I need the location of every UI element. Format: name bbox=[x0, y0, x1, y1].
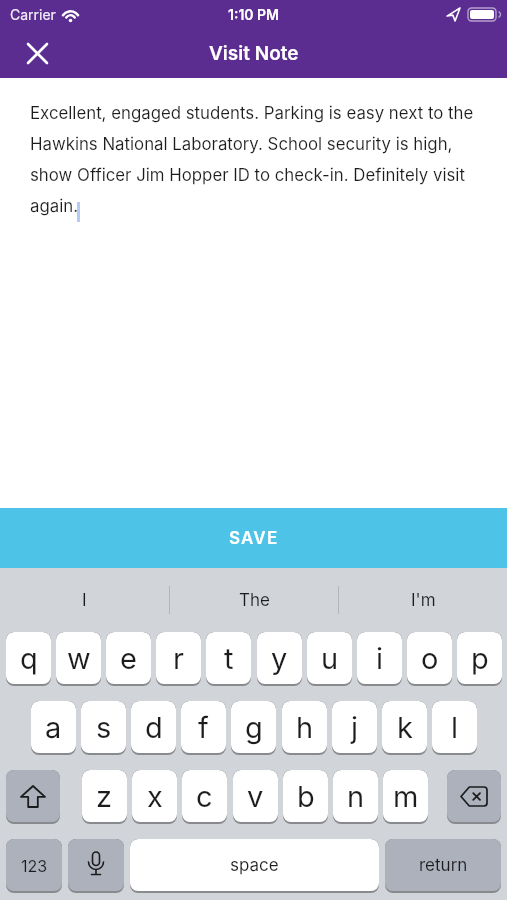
staticText: I'm bbox=[411, 590, 436, 611]
staticText: q bbox=[20, 641, 38, 676]
staticText: 1:10 PM bbox=[228, 6, 280, 23]
button[interactable]: x bbox=[132, 770, 177, 824]
staticText: k bbox=[397, 710, 413, 745]
button[interactable]: u bbox=[307, 632, 352, 686]
button[interactable]: s bbox=[81, 701, 126, 755]
button[interactable] bbox=[68, 839, 124, 893]
staticText: g bbox=[245, 710, 263, 745]
button[interactable] bbox=[18, 34, 56, 72]
button[interactable]: y bbox=[257, 632, 302, 686]
button[interactable]: i bbox=[357, 632, 402, 686]
staticText: f bbox=[198, 710, 209, 745]
staticText: d bbox=[145, 710, 163, 745]
staticText: The bbox=[239, 590, 270, 611]
button[interactable]: space bbox=[130, 839, 379, 893]
staticText: v bbox=[247, 779, 264, 814]
button[interactable]: p bbox=[457, 632, 502, 686]
button[interactable]: m bbox=[383, 770, 428, 824]
staticText: x bbox=[147, 779, 163, 814]
staticText: u bbox=[321, 641, 339, 676]
staticText: y bbox=[271, 641, 288, 676]
button[interactable]: j bbox=[332, 701, 377, 755]
staticText: o bbox=[421, 641, 439, 676]
staticText: n bbox=[347, 779, 365, 814]
staticText: a bbox=[45, 710, 62, 745]
button[interactable]: k bbox=[382, 701, 427, 755]
button[interactable]: The bbox=[170, 568, 338, 632]
button[interactable]: e bbox=[106, 632, 151, 686]
staticText: w bbox=[67, 641, 91, 676]
staticText: Visit Note bbox=[209, 42, 299, 65]
staticText: Excellent, engaged students. Parking is … bbox=[30, 103, 474, 216]
button[interactable]: 123 bbox=[6, 839, 62, 893]
button[interactable]: SAVE bbox=[0, 508, 507, 568]
staticText: h bbox=[296, 710, 314, 745]
staticText: space bbox=[230, 855, 279, 876]
staticText: return bbox=[419, 855, 468, 876]
staticText: s bbox=[96, 710, 112, 745]
staticText: Carrier bbox=[10, 6, 56, 23]
staticText: l bbox=[451, 710, 459, 745]
button[interactable]: c bbox=[182, 770, 227, 824]
button[interactable]: h bbox=[282, 701, 327, 755]
button[interactable]: b bbox=[283, 770, 328, 824]
staticText: b bbox=[297, 779, 315, 814]
button[interactable]: d bbox=[131, 701, 176, 755]
button[interactable]: g bbox=[231, 701, 276, 755]
button[interactable]: return bbox=[385, 839, 501, 893]
staticText: z bbox=[96, 779, 113, 814]
button[interactable]: q bbox=[6, 632, 51, 686]
button[interactable]: w bbox=[56, 632, 101, 686]
button[interactable]: f bbox=[181, 701, 226, 755]
button[interactable]: z bbox=[82, 770, 127, 824]
staticText: m bbox=[393, 779, 419, 814]
staticText: e bbox=[120, 641, 137, 676]
staticText: I bbox=[82, 590, 87, 611]
button[interactable] bbox=[6, 770, 60, 824]
button[interactable]: t bbox=[206, 632, 251, 686]
staticText: r bbox=[173, 641, 184, 676]
staticText: j bbox=[351, 710, 359, 745]
button[interactable]: a bbox=[31, 701, 76, 755]
button[interactable]: r bbox=[156, 632, 201, 686]
staticText: c bbox=[196, 779, 213, 814]
staticText: SAVE bbox=[229, 528, 279, 549]
button[interactable]: l bbox=[432, 701, 477, 755]
button[interactable] bbox=[447, 770, 501, 824]
staticText: 123 bbox=[21, 856, 48, 875]
button[interactable]: o bbox=[407, 632, 452, 686]
button[interactable]: n bbox=[333, 770, 378, 824]
staticText: t bbox=[224, 641, 234, 676]
button[interactable]: v bbox=[233, 770, 278, 824]
button[interactable]: I'm bbox=[339, 568, 507, 632]
staticText: p bbox=[471, 641, 489, 676]
staticText: i bbox=[376, 641, 384, 676]
button[interactable]: I bbox=[0, 568, 169, 632]
